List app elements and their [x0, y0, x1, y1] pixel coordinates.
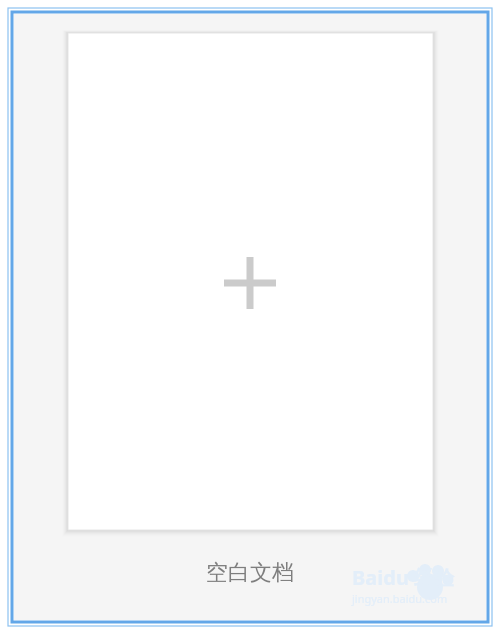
button[interactable]: 空白文档 — [150, 556, 350, 590]
staticText: 空白文档 — [206, 559, 294, 587]
staticText: Baidu 经验 — [352, 564, 455, 591]
staticText: jingyan.baidu.com — [352, 591, 448, 606]
button[interactable]: New blank document — [68, 33, 433, 530]
